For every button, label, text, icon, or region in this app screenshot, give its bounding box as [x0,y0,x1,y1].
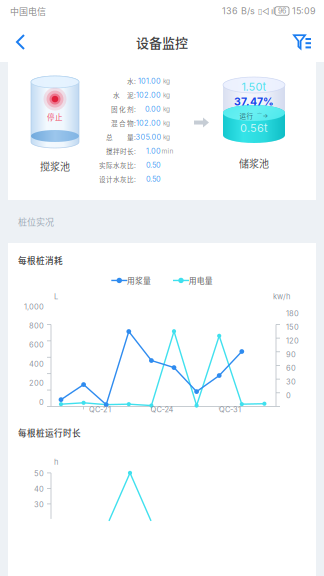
staticText: 150 [286,323,299,332]
staticText: 每根桩消耗 [18,254,63,266]
staticText: QC-24 [150,405,173,414]
staticText: kg [161,91,170,99]
staticText: L [54,292,58,301]
staticText: 60 [286,364,296,373]
staticText: 0.50 [146,160,161,169]
staticText: min [159,147,173,155]
staticText: 0 [286,391,291,400]
staticText: ⌒→ [256,112,268,119]
staticText: 0 [39,398,44,407]
button[interactable]: Back [0,22,40,62]
staticText: 1.50t [241,80,266,93]
staticText: 30 [286,377,296,386]
staticText: ▯◁ [255,6,271,16]
staticText: kg [161,105,170,113]
staticText: 总 量: [106,132,136,142]
staticText: 固 化 剂: [111,104,136,114]
staticText: 0.00 [145,104,161,113]
staticText: 0.56t [240,121,268,135]
staticText: 50 [34,469,44,478]
staticText: 储浆池 [239,156,269,170]
staticText: 136 B/s [222,6,255,16]
staticText: 30 [34,500,44,509]
staticText: 搅浆池 [40,159,70,173]
staticText: QC-31 [219,405,241,414]
staticText: 混 合 物: [111,118,136,128]
staticText: 400 [29,359,44,369]
staticText: 实际水灰比: [99,160,136,170]
staticText: 40 [34,484,44,493]
staticText: 101.00 [138,76,161,85]
staticText: ıl [271,6,275,16]
staticText: 设备监控 [136,33,188,51]
staticText: 0.50 [146,174,161,183]
staticText: 停止 [47,112,63,122]
staticText: 水: [127,76,136,86]
staticText: 200 [29,379,44,388]
staticText: 96 [276,7,288,15]
staticText: 运行 [239,111,253,120]
staticText: kw/h [273,292,290,301]
staticText: 102.00 [136,118,161,127]
staticText: kg [161,133,170,141]
staticText: 用电量 [189,275,213,286]
button[interactable]: Filter [281,22,324,62]
staticText: 水 泥: [113,90,136,100]
staticText: 用浆量 [127,275,151,286]
staticText: 180 [286,309,299,318]
staticText: 800 [29,321,44,330]
staticText: kg [161,77,170,85]
staticText: 1.00 [146,146,161,155]
staticText: 90 [286,350,296,359]
staticText: 37.47% [234,95,274,108]
staticText: QC-21 [89,405,111,414]
staticText: 桩位实况 [18,215,54,228]
staticText: 搅拌时长: [106,146,136,156]
staticText: 设计水灰比: [99,174,136,184]
staticText: 600 [29,340,44,349]
staticText: 305.00 [135,132,161,141]
staticText: 120 [286,336,299,345]
staticText: kg [161,119,170,127]
staticText: 1,000 [24,302,44,311]
staticText: 15:09 [289,6,316,16]
staticText: 中国电信 [10,4,46,17]
staticText: 102.00 [136,90,161,99]
staticText: h [54,457,58,466]
staticText: 每根桩运行时长 [18,426,81,439]
